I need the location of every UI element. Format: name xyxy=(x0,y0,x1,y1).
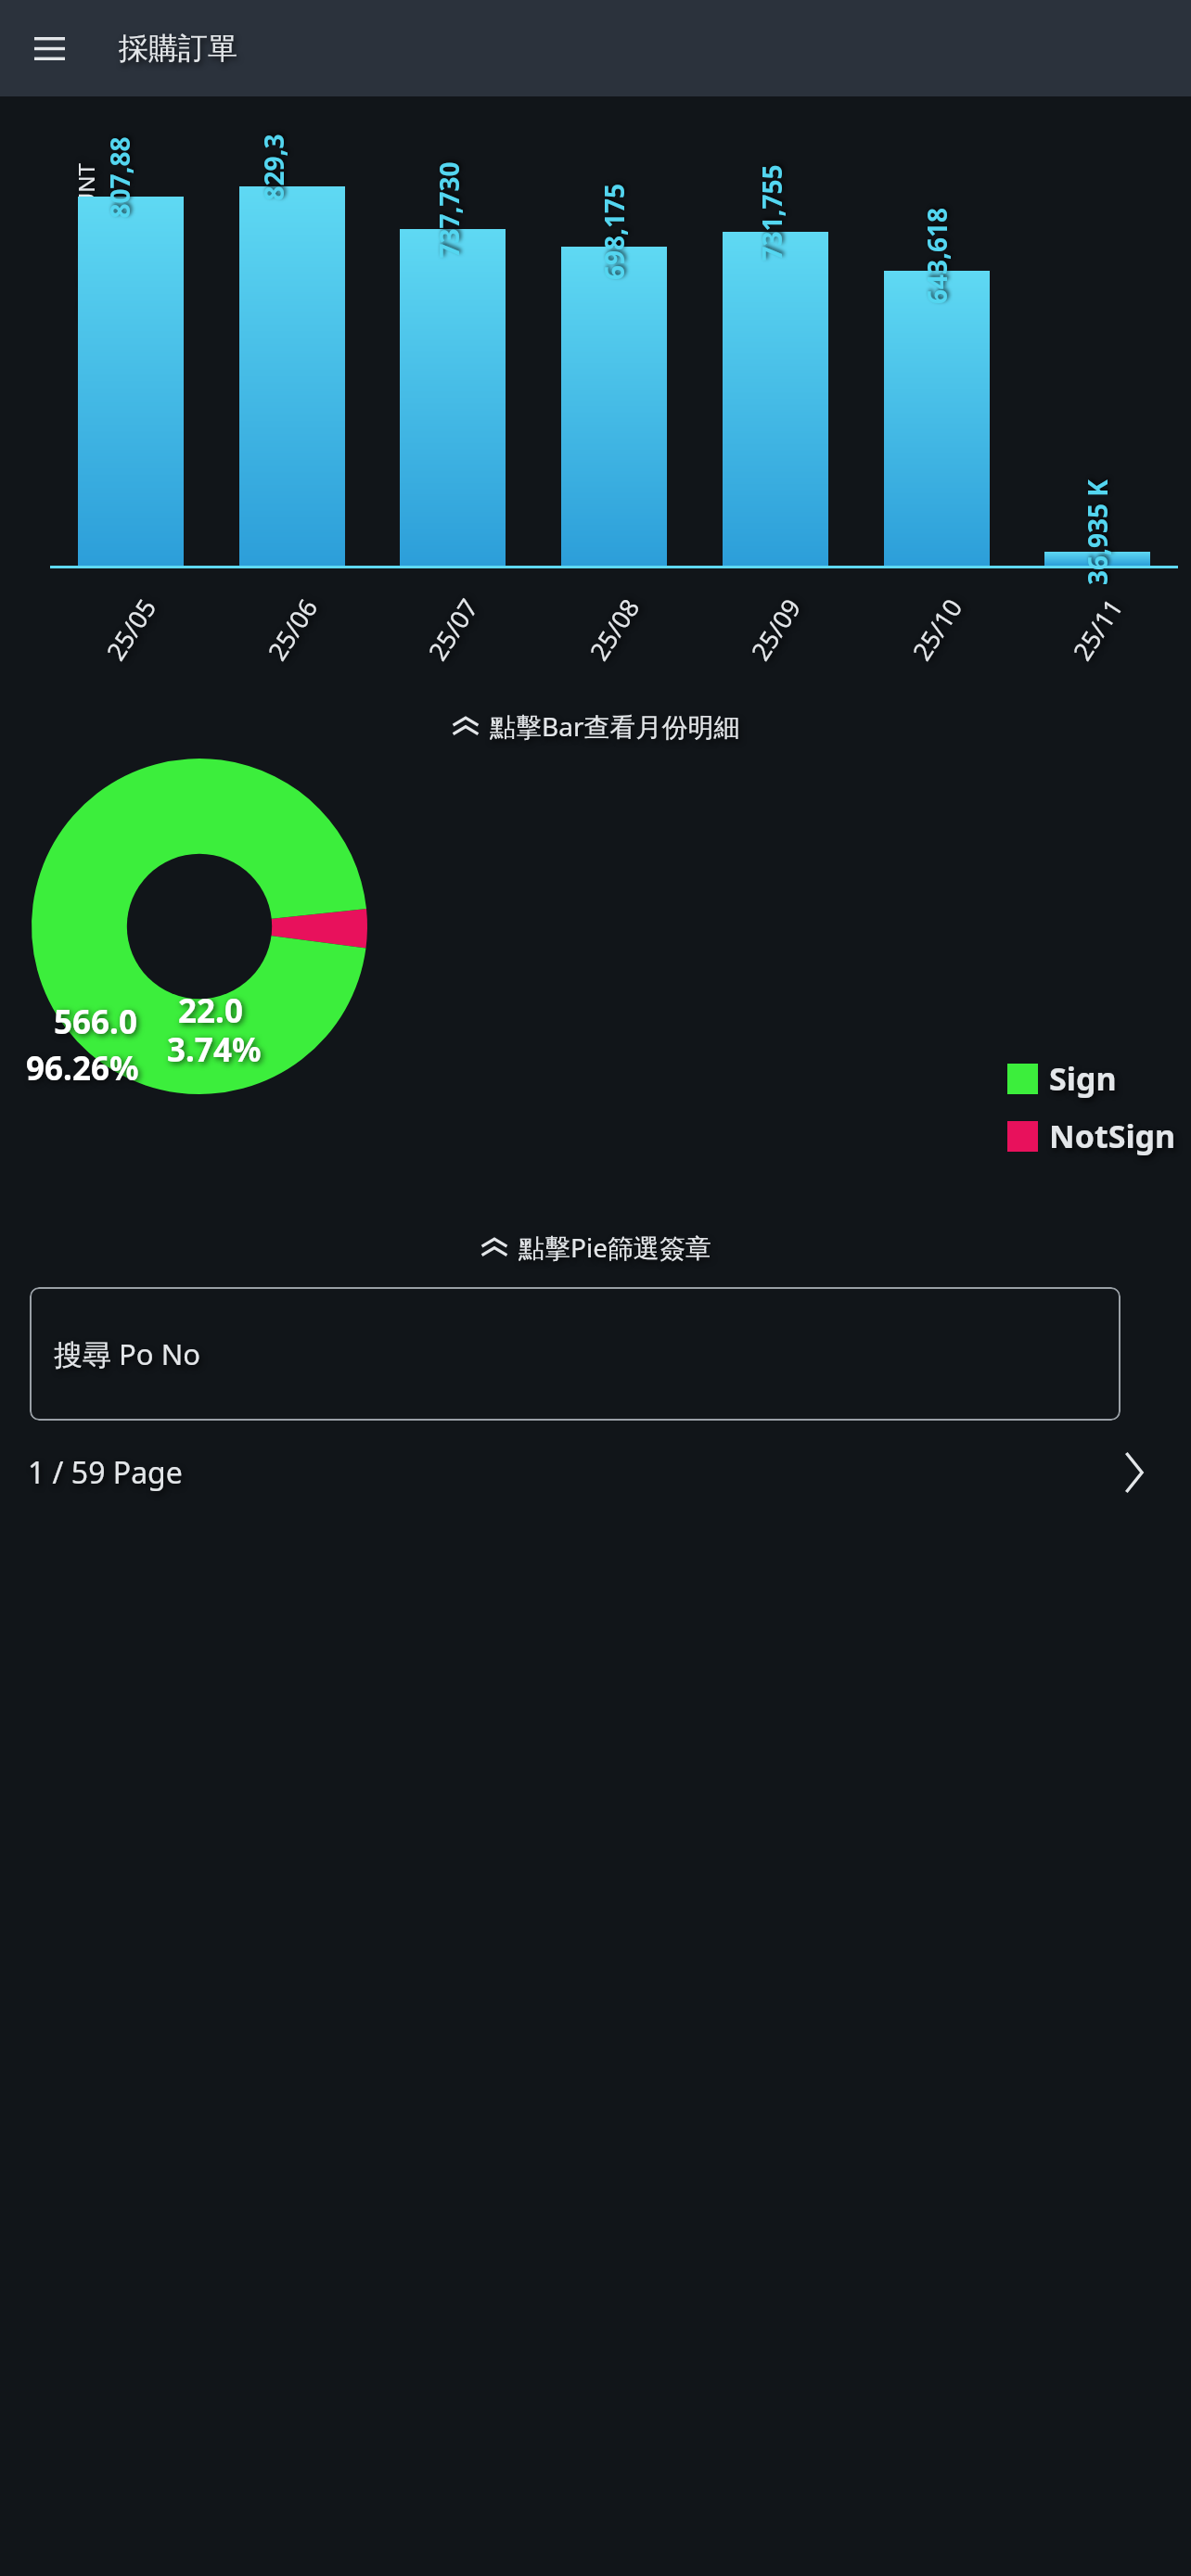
staticText: 25/06 xyxy=(260,592,325,666)
staticText: 22.0 xyxy=(178,988,243,1033)
staticText: 25/05 xyxy=(98,592,163,666)
staticText: 829,3 xyxy=(256,133,291,201)
button[interactable]: Sign xyxy=(1007,1057,1117,1100)
staticText: 採購訂單 xyxy=(119,30,237,67)
staticText: 698,175 K xyxy=(596,174,632,280)
staticText: 1 / 59 Page xyxy=(28,1452,183,1493)
button[interactable]: 點擊Pie篩選簽章 xyxy=(0,1218,1191,1276)
staticText: 搜尋 Po No xyxy=(54,1334,200,1373)
staticText: 25/08 xyxy=(581,592,647,666)
button[interactable]: Bar 25/09 xyxy=(723,232,828,566)
button[interactable]: Bar 25/11 xyxy=(1044,552,1150,566)
staticText: 731,755 xyxy=(754,164,789,261)
staticText: 25/09 xyxy=(743,592,808,666)
button[interactable]: Next page xyxy=(1108,1447,1159,1498)
staticText: 25/07 xyxy=(420,592,485,666)
staticText: 737,730 xyxy=(431,161,466,258)
button[interactable]: Bar 25/07 xyxy=(400,229,506,566)
staticText: 25/10 xyxy=(904,592,969,666)
button[interactable]: NotSign xyxy=(1007,1115,1176,1157)
button[interactable]: Bar 25/06 xyxy=(239,186,345,566)
staticText: 807,88 xyxy=(102,136,137,218)
staticText: 643,618 K xyxy=(919,198,954,304)
staticText: 96.26% xyxy=(26,1046,139,1090)
staticText: 566.0 xyxy=(54,1000,137,1044)
staticText: 點擊Pie篩選簽章 xyxy=(519,1230,711,1265)
button[interactable]: 搜尋 Po No xyxy=(30,1287,1121,1421)
staticText: NotSign xyxy=(1049,1115,1176,1157)
staticText: Sign xyxy=(1049,1057,1117,1100)
button[interactable]: Signature ratio pie chart xyxy=(32,759,367,1094)
staticText: 點擊Bar查看月份明細 xyxy=(490,708,740,744)
button[interactable]: 點擊Bar查看月份明細 xyxy=(0,697,1191,755)
button[interactable]: Bar 25/08 xyxy=(561,247,667,566)
button[interactable]: Open navigation menu xyxy=(20,19,78,77)
staticText: 25/11 xyxy=(1065,592,1130,666)
staticText: 36,935 K xyxy=(1080,479,1115,585)
button[interactable]: Bar 25/10 xyxy=(884,271,990,566)
staticText: 3.74% xyxy=(167,1027,262,1072)
staticText: TWD_AMOUNT xyxy=(70,163,101,320)
button[interactable]: Bar 25/05 xyxy=(78,197,184,566)
